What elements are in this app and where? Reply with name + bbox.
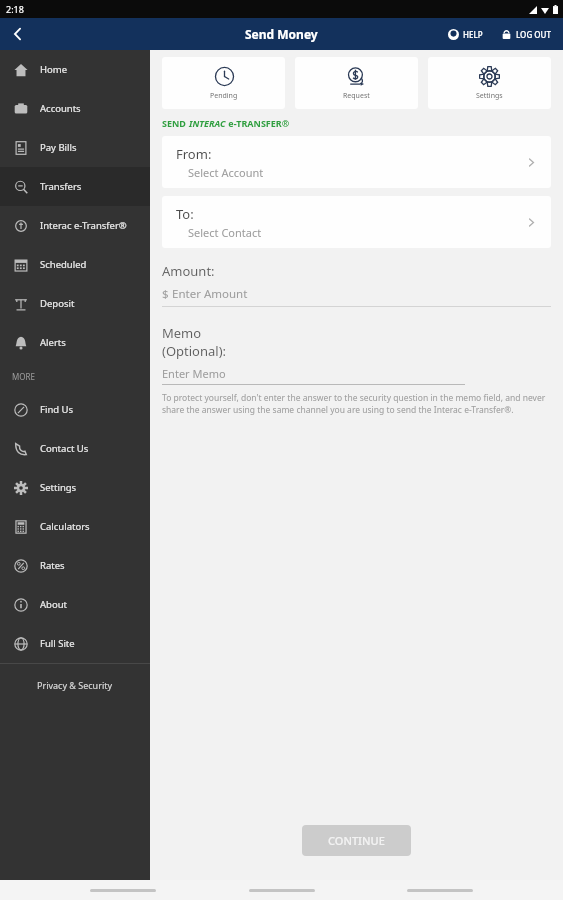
- staticText: MORE: [12, 371, 35, 382]
- staticText: Find Us: [40, 403, 74, 416]
- button[interactable]: Navigation: [88, 883, 158, 897]
- button[interactable]: Find Us: [0, 390, 150, 429]
- staticText: Deposit: [40, 297, 75, 310]
- staticText: To protect yourself, don't enter the ans…: [162, 392, 551, 416]
- button[interactable]: Enter Memo: [162, 366, 465, 381]
- staticText: SEND: [162, 117, 189, 129]
- staticText: Request: [343, 91, 370, 101]
- button[interactable]: To:: [162, 196, 551, 248]
- staticText: Privacy & Security: [37, 679, 113, 691]
- button[interactable]: Contact Us: [0, 429, 150, 468]
- button[interactable]: CONTINUE: [302, 825, 411, 856]
- button[interactable]: Settings: [0, 468, 150, 507]
- staticText: Alerts: [40, 336, 66, 349]
- button[interactable]: Full Site: [0, 624, 150, 663]
- staticText: Transfers: [40, 180, 82, 193]
- staticText: Rates: [40, 559, 65, 572]
- button[interactable]: Navigation: [247, 883, 317, 897]
- staticText: Scheduled: [40, 258, 87, 271]
- button[interactable]: Home: [0, 50, 150, 89]
- button[interactable]: Navigation: [405, 883, 475, 897]
- staticText: To:: [176, 205, 194, 223]
- staticText: Memo: [162, 324, 202, 342]
- button[interactable]: Accounts: [0, 89, 150, 128]
- staticText: Accounts: [40, 102, 81, 115]
- staticText: CONTINUE: [328, 833, 385, 848]
- staticText: Calculators: [40, 520, 90, 533]
- button[interactable]: Back: [0, 18, 36, 50]
- button[interactable]: From:: [162, 136, 551, 188]
- button[interactable]: Rates: [0, 546, 150, 585]
- staticText: 2:18: [6, 3, 24, 15]
- button[interactable]: Pay Bills: [0, 128, 150, 167]
- button[interactable]: Privacy & Security: [0, 664, 150, 706]
- button[interactable]: Transfers: [0, 167, 150, 206]
- button[interactable]: Pending: [162, 57, 285, 109]
- button[interactable]: Scheduled: [0, 245, 150, 284]
- button[interactable]: Settings: [428, 57, 551, 109]
- staticText: Pay Bills: [40, 141, 77, 154]
- staticText: Interac e-Transfer®: [40, 219, 127, 232]
- staticText: INTERAC: [189, 117, 226, 129]
- staticText: Enter Memo: [162, 366, 226, 381]
- staticText: Settings: [476, 91, 503, 101]
- staticText: Home: [40, 63, 68, 76]
- staticText: HELP: [463, 29, 483, 40]
- staticText: LOG OUT: [516, 29, 551, 40]
- button[interactable]: Calculators: [0, 507, 150, 546]
- staticText: Amount:: [162, 262, 215, 280]
- button[interactable]: LOG OUT: [497, 25, 555, 44]
- button[interactable]: Alerts: [0, 323, 150, 362]
- staticText: Select Account: [188, 165, 264, 180]
- staticText: Contact Us: [40, 442, 89, 455]
- staticText: From:: [176, 145, 212, 163]
- button[interactable]: HELP: [444, 25, 487, 44]
- staticText: Settings: [40, 481, 77, 494]
- button[interactable]: About: [0, 585, 150, 624]
- staticText: $: [162, 286, 172, 302]
- button[interactable]: Request: [295, 57, 418, 109]
- staticText: Full Site: [40, 637, 75, 650]
- staticText: Send Money: [245, 26, 318, 42]
- staticText: (Optional):: [162, 342, 227, 360]
- staticText: Enter Amount: [172, 286, 248, 302]
- staticText: Select Contact: [188, 225, 262, 240]
- button[interactable]: Interac e-Transfer®: [0, 206, 150, 245]
- staticText: e-TRANSFER®: [226, 117, 290, 129]
- button[interactable]: Deposit: [0, 284, 150, 323]
- button[interactable]: $: [162, 286, 551, 302]
- staticText: About: [40, 598, 67, 611]
- staticText: Pending: [210, 91, 238, 101]
